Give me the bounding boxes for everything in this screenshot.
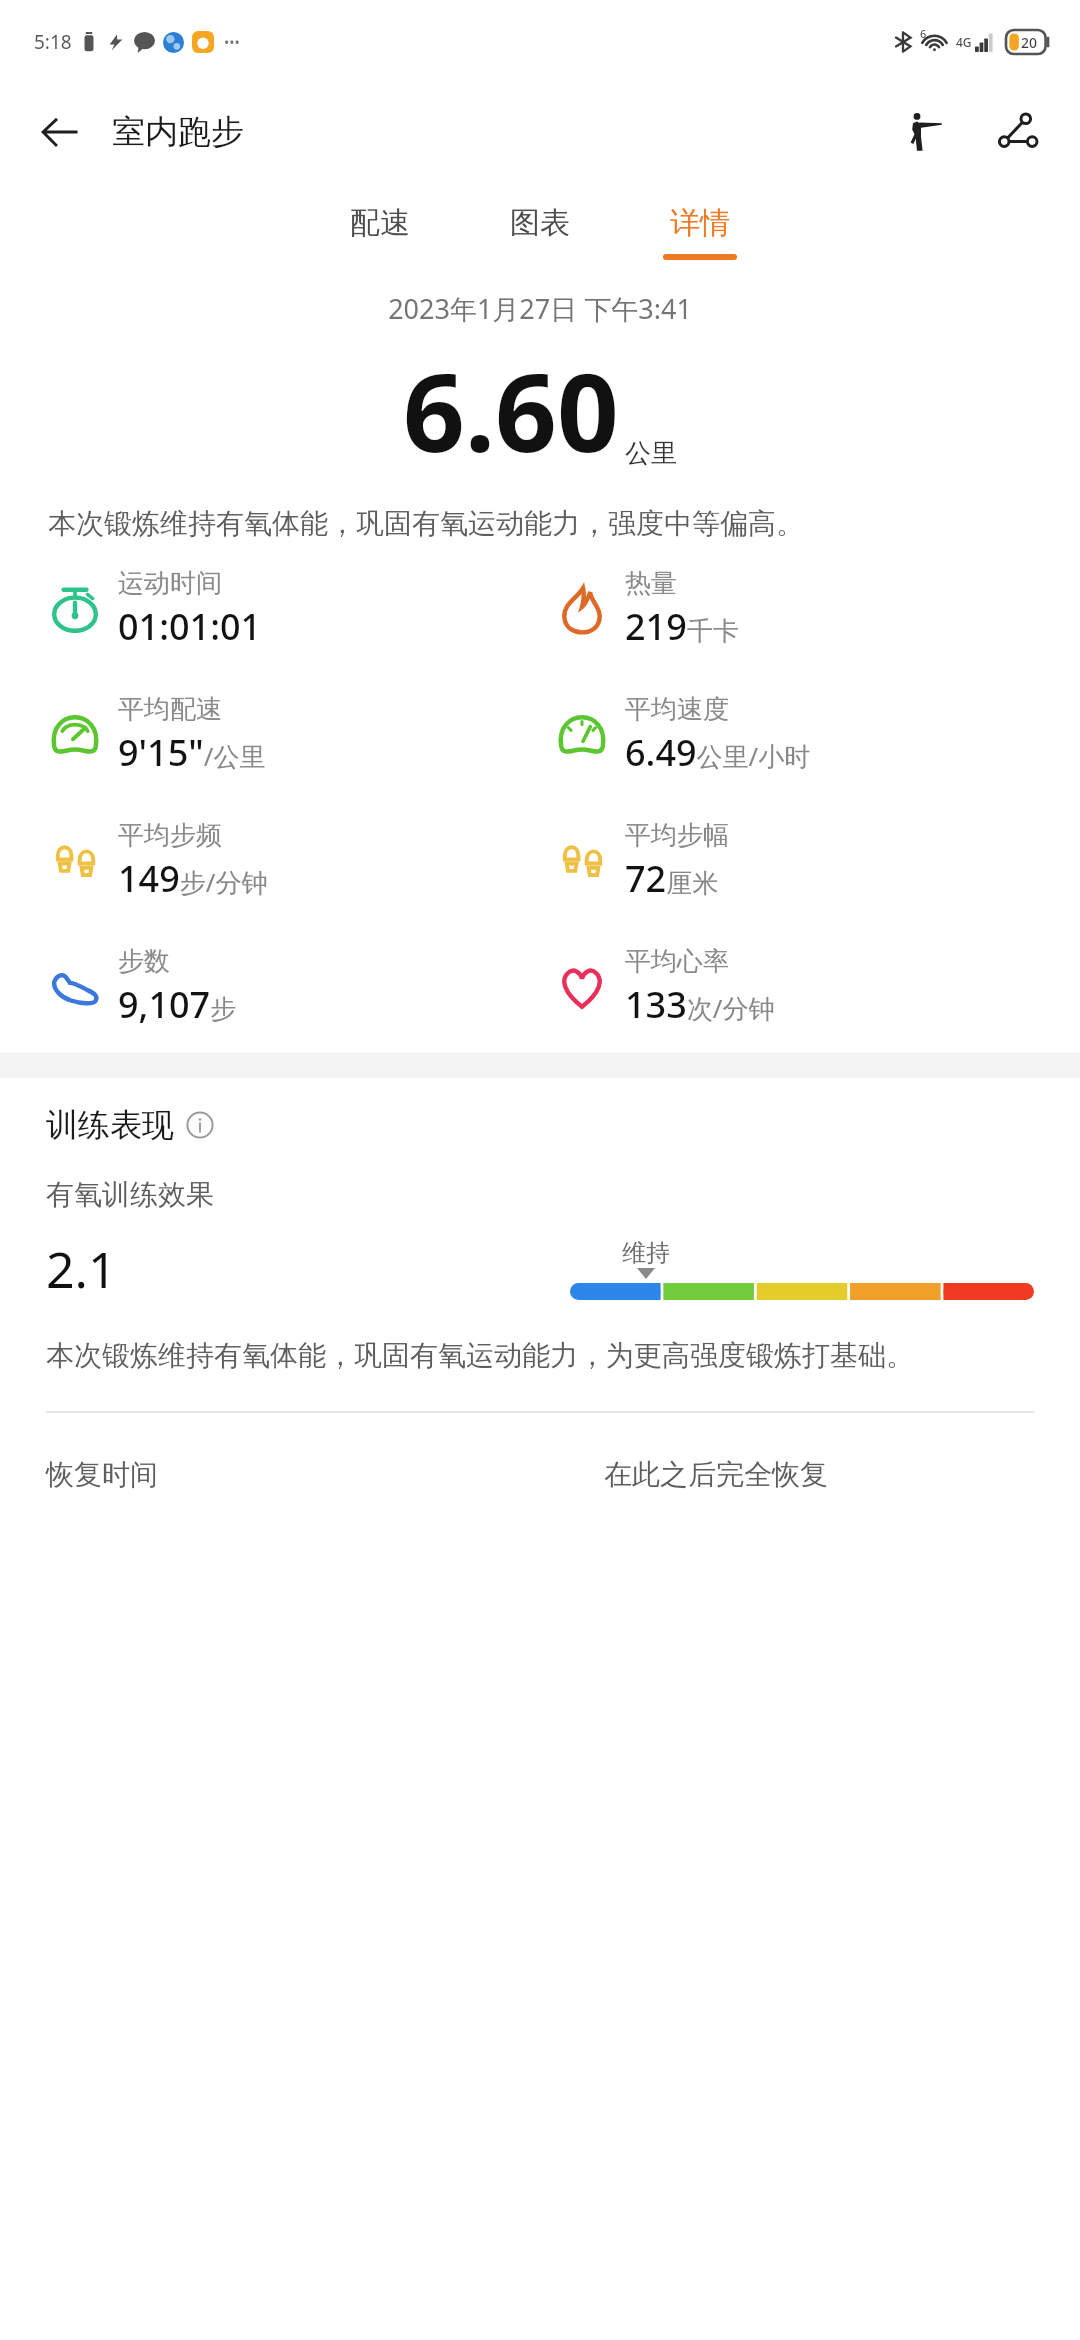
staticText: 平均配速 [118, 693, 222, 726]
staticText: 6.49公里/小时 [625, 728, 811, 777]
staticText: 配速 [350, 204, 410, 242]
button[interactable]: 图表 [493, 198, 587, 266]
button[interactable]: Workout type [892, 99, 958, 165]
button[interactable]: Back [28, 101, 90, 163]
staticText: 图表 [510, 204, 570, 242]
staticText: 平均速度 [625, 693, 729, 726]
staticText: 在此之后完全恢复 [604, 1457, 828, 1492]
staticText: 室内跑步 [112, 111, 244, 153]
staticText: 5:18 [34, 29, 72, 55]
staticText: 149步/分钟 [118, 854, 268, 903]
staticText: 公里 [625, 437, 677, 470]
button[interactable]: 详情 [653, 198, 747, 266]
button[interactable]: 平均步频 [46, 819, 268, 903]
button[interactable]: 热量 [553, 567, 739, 651]
staticText: 6 [920, 26, 927, 41]
staticText: 平均心率 [625, 945, 729, 978]
staticText: 9'15"/公里 [118, 728, 266, 777]
staticText: 维持 [622, 1238, 670, 1268]
staticText: 01:01:01 [118, 602, 262, 651]
staticText: 热量 [625, 567, 677, 600]
staticText: 72厘米 [625, 854, 719, 903]
button[interactable]: 训练表现 [46, 1105, 214, 1145]
staticText: 2.1 [46, 1235, 117, 1303]
button[interactable]: 步数 [46, 945, 237, 1029]
staticText: 平均步频 [118, 819, 222, 852]
button[interactable]: Share [984, 99, 1050, 165]
staticText: 219千卡 [625, 602, 739, 651]
staticText: 平均步幅 [625, 819, 729, 852]
other: Info [186, 1111, 214, 1139]
staticText: 步数 [118, 945, 170, 978]
staticText: 恢复时间 [46, 1457, 158, 1492]
staticText: ••• [224, 33, 240, 52]
staticText: 4G [956, 34, 972, 50]
staticText: 133次/分钟 [625, 980, 775, 1029]
staticText: 详情 [670, 204, 730, 242]
staticText: 有氧训练效果 [46, 1177, 214, 1212]
button[interactable]: 平均速度 [553, 693, 811, 777]
staticText: 2023年1月27日 下午3:41 [0, 290, 1080, 327]
staticText: 本次锻炼维持有氧体能，巩固有氧运动能力，为更高强度锻炼打基础。 [46, 1338, 914, 1373]
staticText: 运动时间 [118, 567, 222, 600]
staticText: 9,107步 [118, 980, 237, 1029]
staticText: 6.60 [403, 337, 619, 484]
staticText: 训练表现 [46, 1105, 174, 1145]
button[interactable]: 运动时间 [46, 567, 262, 651]
staticText: 本次锻炼维持有氧体能，巩固有氧运动能力，强度中等偏高。 [48, 506, 1032, 541]
button[interactable]: 配速 [333, 198, 427, 266]
button[interactable]: 平均步幅 [553, 819, 729, 903]
button[interactable]: 平均心率 [553, 945, 775, 1029]
button[interactable]: 平均配速 [46, 693, 266, 777]
staticText: 20 [1021, 33, 1038, 52]
